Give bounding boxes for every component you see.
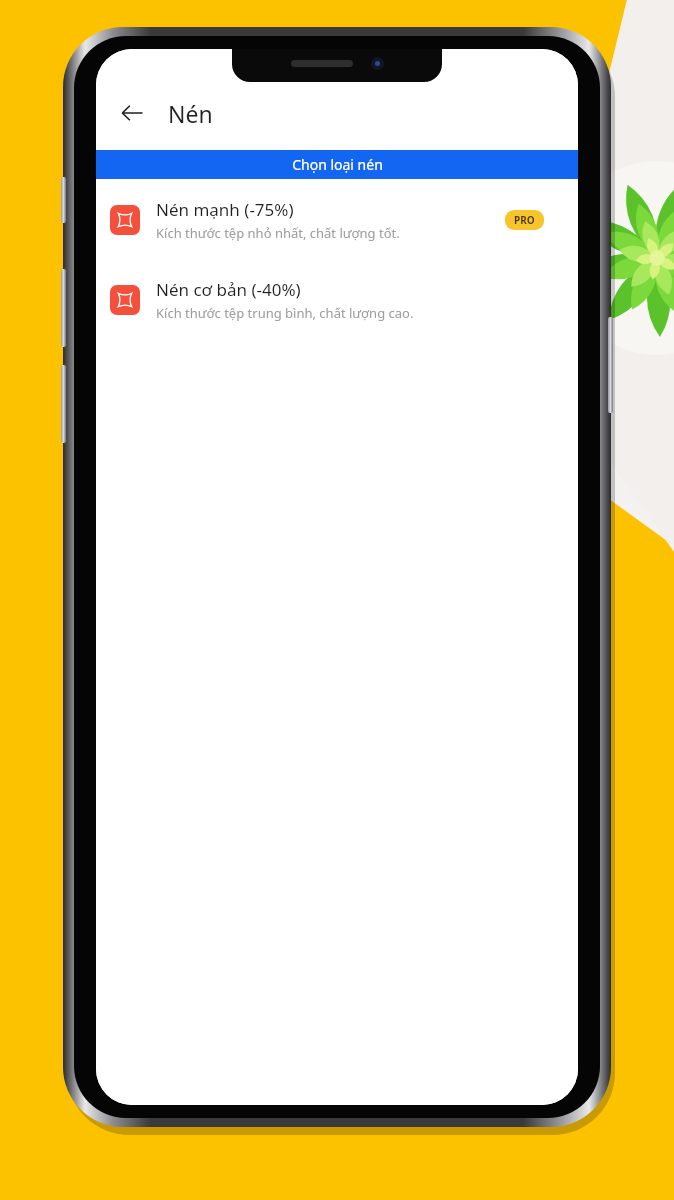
staticText: Kích thước tệp trung bình, chất lượng ca…	[156, 304, 414, 322]
button[interactable]: Chọn loại nén	[96, 150, 578, 179]
staticText: Nén cơ bản (-40%)	[156, 278, 301, 301]
button[interactable]: Nén mạnh (-75%)	[96, 196, 578, 244]
button[interactable]: PRO	[505, 210, 544, 230]
staticText: Nén	[168, 98, 213, 129]
staticText: Kích thước tệp nhỏ nhất, chất lượng tốt.	[156, 224, 400, 242]
staticText: Chọn loại nén	[292, 155, 383, 174]
staticText: Nén mạnh (-75%)	[156, 198, 294, 221]
staticText: PRO	[514, 213, 535, 227]
button[interactable]: Back	[110, 91, 154, 135]
button[interactable]: Nén cơ bản (-40%)	[96, 276, 578, 324]
